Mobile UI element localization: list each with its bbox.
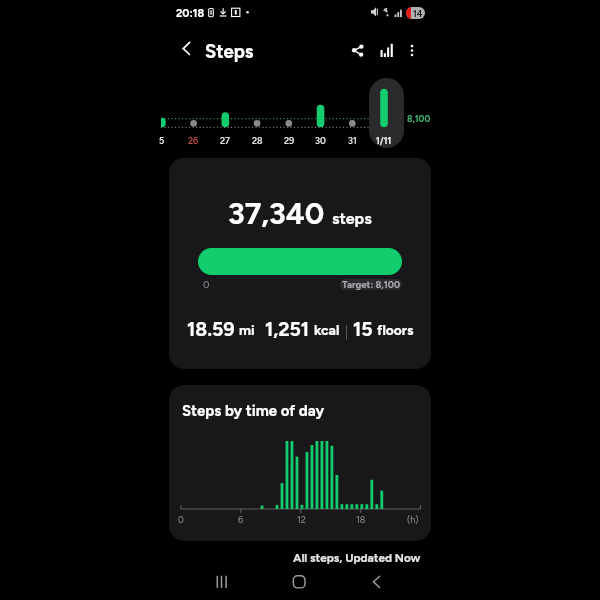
staticText: Steps by time of day	[182, 402, 325, 420]
staticText: 12	[297, 514, 306, 525]
staticText: 27	[220, 135, 230, 146]
staticText: 0	[203, 278, 210, 290]
staticText: 29	[284, 135, 295, 146]
staticText: 1/11	[376, 135, 392, 146]
staticText: 26	[188, 135, 199, 146]
button[interactable]: Home	[280, 562, 320, 600]
button[interactable]: More options	[401, 38, 425, 62]
button[interactable]: Back	[178, 38, 202, 62]
staticText: (h)	[407, 514, 419, 525]
staticText: 0	[178, 514, 184, 525]
staticText: mi	[239, 322, 255, 339]
staticText: floors	[377, 322, 414, 339]
staticText: 28	[252, 135, 263, 146]
staticText: 18.59	[187, 317, 235, 340]
staticText: Target: 8,100	[342, 279, 401, 290]
staticText: 31	[348, 135, 357, 146]
staticText: All steps, Updated Now	[293, 551, 421, 565]
staticText: Steps	[205, 40, 254, 62]
button[interactable]: Recent apps	[202, 562, 242, 600]
button[interactable]: Chart view	[376, 38, 400, 62]
button[interactable]: 37,340	[169, 158, 431, 369]
staticText: 14	[413, 8, 423, 19]
staticText: 37,340	[228, 195, 325, 231]
button[interactable]	[369, 78, 404, 148]
staticText: 18	[356, 514, 366, 525]
staticText: 20:18	[176, 7, 205, 20]
staticText: kcal	[314, 322, 340, 339]
staticText: 30	[315, 135, 326, 146]
staticText: 5	[159, 135, 165, 146]
button[interactable]: Steps by time of day	[169, 385, 431, 541]
staticText: 1,251	[265, 317, 310, 340]
staticText: 15	[353, 317, 373, 340]
button[interactable]: Back	[360, 562, 400, 600]
staticText: steps	[332, 209, 372, 228]
staticText: 6	[238, 514, 244, 525]
staticText: 8,100	[407, 113, 431, 124]
button[interactable]: Steps	[205, 40, 254, 62]
button[interactable]: Share	[346, 38, 370, 62]
